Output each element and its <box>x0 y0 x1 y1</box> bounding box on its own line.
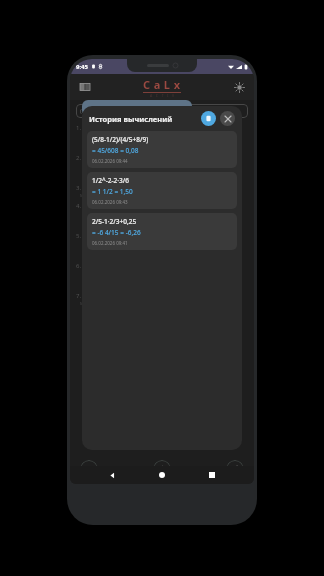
button[interactable]: (5/8-1/2)/(4/5+8/9) <box>76 104 248 118</box>
staticText: 06.02.2026 09:44 <box>92 158 128 164</box>
staticText: 3. Находим общий знаменатель: <box>76 184 171 192</box>
button[interactable]: Home <box>154 467 170 483</box>
staticText: 06.02.2026 09:41 <box>92 240 128 246</box>
button[interactable]: History <box>153 460 171 478</box>
staticText: 5. Выполняем деление: <box>76 232 145 240</box>
button[interactable]: Brightness <box>232 80 246 94</box>
staticText: = -6 4/15 = -6,26 <box>92 228 141 237</box>
staticText: x <box>171 77 181 92</box>
staticText: a <box>151 77 161 92</box>
staticText: 1/2^-2-2·3/6 <box>92 176 129 185</box>
staticText: можно привести <box>80 192 121 199</box>
button[interactable]: Back <box>104 467 120 483</box>
staticText: (5/8-1/2)/(4/5+8/9) <box>80 107 132 115</box>
button[interactable]: (5/8-1/2)/(4/5+8/9) <box>87 131 237 168</box>
button[interactable]: Collapse <box>80 460 98 478</box>
staticText: 8 <box>85 172 89 180</box>
staticText: 6. Складываем: <box>76 262 121 270</box>
staticText: 2. Вычитаем дроби: <box>76 154 134 162</box>
staticText: 06.02.2026 09:43 <box>92 199 128 205</box>
button[interactable]: 1/2^-2-2·3/6 <box>87 172 237 209</box>
staticText: A C T I V <box>150 93 175 98</box>
staticText: 7. Находим общий знаменатель: <box>76 292 171 300</box>
staticText: L <box>161 77 171 92</box>
button[interactable]: Book <box>78 80 92 94</box>
button[interactable]: Delete history <box>201 111 216 126</box>
staticText: 9:45 <box>76 63 88 71</box>
staticText: 8 <box>85 220 89 228</box>
staticText: C <box>143 77 151 92</box>
staticText: (5/8-1/2)/(4/5+8/9) <box>92 135 149 144</box>
staticText: = 45/608 = 0,08 <box>92 146 139 155</box>
button[interactable]: Recents <box>204 467 220 483</box>
button[interactable]: 2/5-1·2/3+0,25 <box>87 213 237 250</box>
button[interactable]: Share <box>226 460 244 478</box>
staticText: 5 <box>85 241 89 249</box>
staticText: 1. Исходное выражение: <box>76 124 148 132</box>
staticText: 4. Приводим к виду: <box>76 202 135 210</box>
staticText: = 1 1/2 = 1,50 <box>92 187 133 196</box>
staticText: История вычислений <box>89 114 173 124</box>
staticText: 5 <box>85 211 89 219</box>
staticText: 2/5-1·2/3+0,25 <box>92 217 137 226</box>
button[interactable]: Close <box>220 111 235 126</box>
staticText: 5 <box>85 163 89 171</box>
